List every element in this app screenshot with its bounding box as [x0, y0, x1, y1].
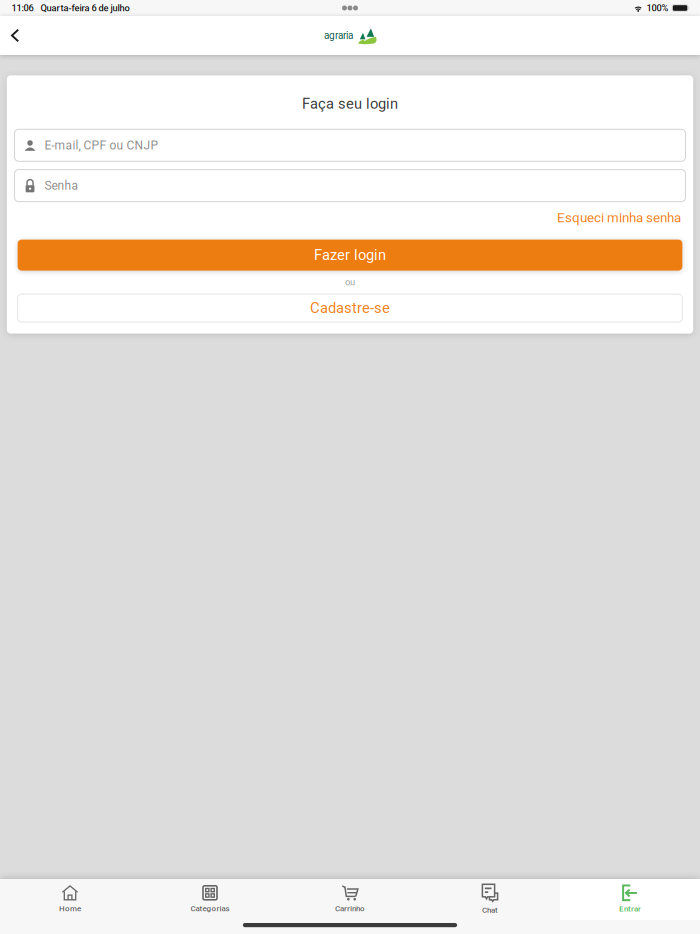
button[interactable]: Cadastre-se	[18, 294, 682, 322]
staticText: agraria	[324, 30, 353, 41]
button[interactable]: Carrinho	[280, 879, 420, 920]
staticText: 100%	[647, 2, 669, 13]
staticText: Esqueci minha senha	[557, 210, 681, 225]
button[interactable]: Fazer login	[18, 240, 682, 271]
staticText: Carrinho	[335, 904, 365, 913]
button[interactable]: Home	[0, 879, 140, 920]
button[interactable]: Back	[0, 16, 31, 55]
staticText: Home	[59, 904, 81, 913]
staticText: Categorias	[190, 904, 229, 913]
staticText: Senha	[44, 179, 78, 193]
staticText: ou	[345, 277, 355, 287]
staticText: Cadastre-se	[310, 299, 390, 317]
button[interactable]: Entrar	[560, 879, 700, 920]
staticText: Chat	[482, 905, 498, 915]
staticText: Fazer login	[314, 246, 386, 264]
staticText: E-mail, CPF ou CNJP	[44, 138, 158, 152]
button[interactable]: Chat	[420, 879, 560, 920]
button[interactable]: Esqueci minha senha	[557, 202, 685, 228]
staticText: Faça seu login	[302, 95, 398, 112]
button[interactable]: Categorias	[140, 879, 280, 920]
staticText: 11:06	[11, 2, 33, 13]
staticText: Entrar	[619, 904, 641, 914]
staticText: Quarta-feira 6 de julho	[40, 2, 129, 13]
